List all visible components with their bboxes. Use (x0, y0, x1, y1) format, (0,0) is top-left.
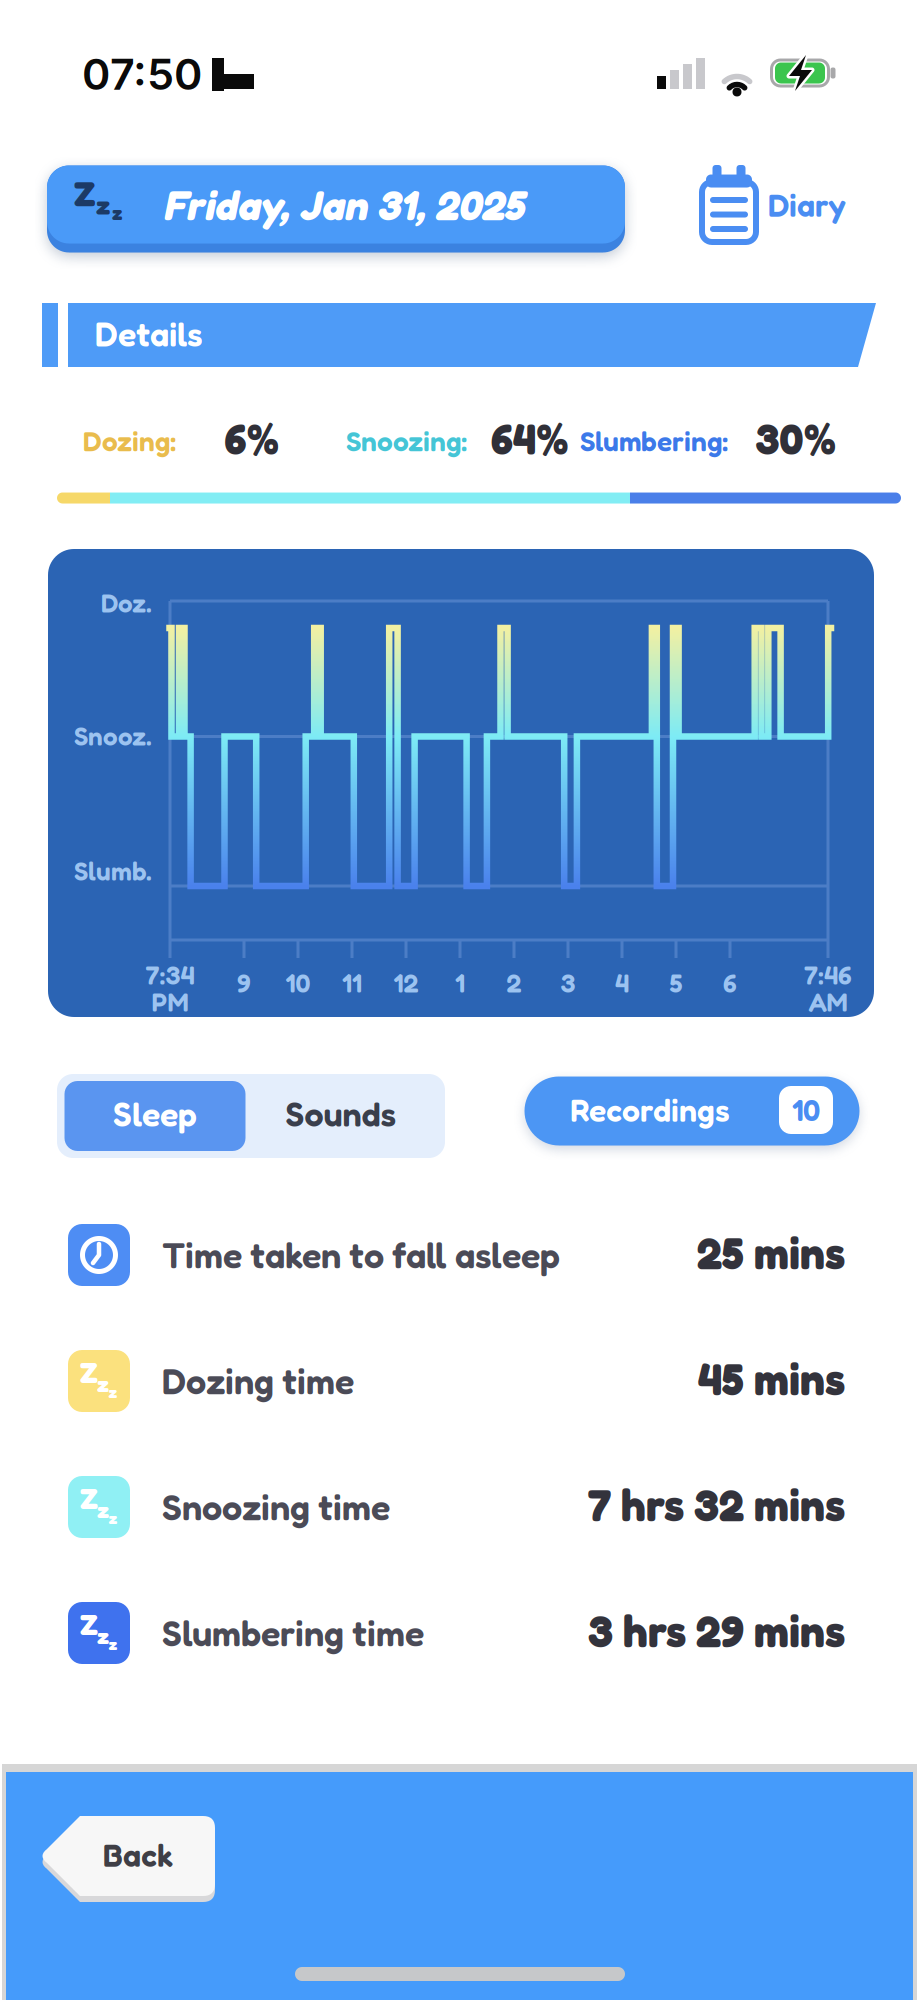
button[interactable]: Sleep (64, 1081, 245, 1151)
staticText: 30% (755, 414, 836, 464)
staticText: z (108, 1508, 117, 1528)
button[interactable]: Sounds (261, 1081, 421, 1151)
staticText: 2 (506, 967, 521, 999)
staticText: Dozing time (162, 1359, 354, 1403)
staticText: Recordings (570, 1091, 730, 1129)
staticText: 12 (393, 967, 418, 999)
staticText: Time taken to fall asleep (162, 1233, 560, 1277)
button[interactable]: Diary (696, 160, 852, 250)
staticText: 3 hrs 29 mins (588, 1604, 845, 1658)
staticText: Friday, Jan 31, 2025 (170, 180, 531, 230)
staticText: Sleep (113, 1093, 197, 1134)
staticText: Slumb. (74, 855, 152, 887)
staticText: Z (74, 171, 96, 215)
staticText: z (97, 1497, 109, 1523)
staticText: Z (80, 1480, 98, 1516)
staticText: 4 (615, 967, 629, 999)
staticText: Slumbering: (580, 424, 728, 458)
staticText: 7:46 (804, 959, 852, 991)
staticText: 64% (491, 414, 569, 464)
staticText: Z (80, 1606, 98, 1642)
staticText: Z (80, 1354, 98, 1390)
staticText: 25 mins (697, 1226, 845, 1280)
staticText: 1 (455, 967, 465, 999)
staticText: 7:34 (145, 959, 194, 991)
staticText: Slumbering time (162, 1611, 424, 1655)
staticText: PM (151, 986, 188, 1018)
staticText: z (97, 1371, 109, 1397)
staticText: Diary (768, 186, 846, 224)
staticText: Sounds (285, 1093, 396, 1134)
button[interactable]: Back (37, 1813, 219, 1905)
staticText: z (112, 201, 122, 224)
staticText: 5 (669, 967, 682, 999)
button[interactable]: Recordings (524, 1076, 859, 1145)
staticText: Doz. (101, 587, 152, 619)
staticText: 3 (560, 967, 575, 999)
staticText: z (108, 1382, 117, 1402)
staticText: 11 (342, 967, 362, 999)
staticText: z (108, 1634, 117, 1654)
staticText: z (97, 1623, 109, 1649)
staticText: z (96, 189, 110, 221)
staticText: Snoozing time (162, 1485, 390, 1529)
staticText: Back (103, 1836, 173, 1874)
staticText: Snooz. (74, 720, 152, 752)
staticText: AM (808, 986, 847, 1018)
staticText: 45 mins (698, 1352, 845, 1406)
staticText: Dozing: (83, 424, 176, 458)
staticText: 9 (237, 967, 251, 999)
staticText: Snoozing: (346, 424, 467, 458)
staticText: 07:50 (82, 48, 202, 100)
staticText: 10 (285, 967, 310, 999)
staticText: 6% (224, 414, 279, 464)
staticText: 7 hrs 32 mins (588, 1478, 845, 1532)
staticText: 6 (723, 967, 737, 999)
button[interactable]: Z (47, 165, 625, 252)
staticText: 10 (792, 1092, 820, 1128)
staticText: Details (95, 313, 203, 354)
